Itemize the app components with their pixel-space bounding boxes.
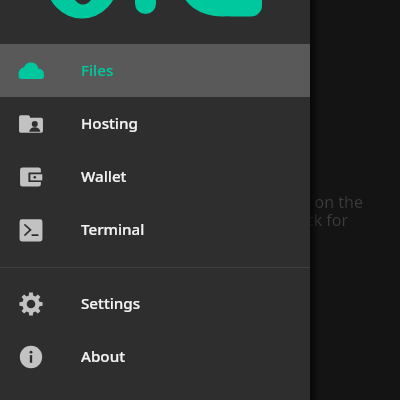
button[interactable]: Terminal [0,203,310,256]
staticText: Files [81,60,114,81]
staticText: Terminal [81,219,145,240]
staticText: About [81,346,125,367]
button[interactable]: About [0,330,310,383]
button[interactable]: Settings [0,277,310,330]
button[interactable]: Close navigation drawer [0,0,400,400]
staticText: Settings [81,293,141,314]
button[interactable]: App logo [0,0,310,44]
staticText: Hosting [81,113,138,134]
button[interactable]: Files [0,44,310,97]
button[interactable]: Hosting [0,97,310,150]
staticText: Wallet [81,166,127,187]
staticText: ts on the ack for [297,191,364,230]
button[interactable]: Wallet [0,150,310,203]
